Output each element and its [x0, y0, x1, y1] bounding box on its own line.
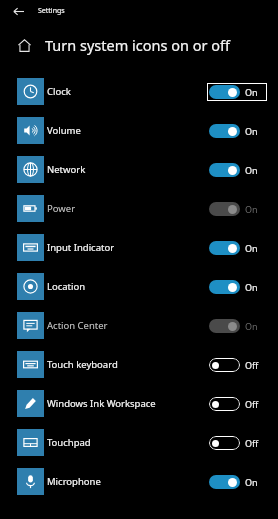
button[interactable]: Clock — [0, 78, 278, 105]
button[interactable]: Home — [13, 34, 35, 56]
button[interactable]: Input Indicator toggle — [209, 241, 265, 255]
button[interactable]: Volume toggle — [209, 124, 265, 138]
staticText: Microphone — [47, 475, 207, 488]
staticText: Volume — [47, 124, 207, 137]
staticText: Network — [47, 163, 207, 176]
staticText: Location — [47, 280, 207, 293]
staticText: On — [245, 203, 258, 215]
staticText: Windows Ink Workspace — [47, 397, 207, 410]
staticText: Power — [47, 202, 207, 215]
button[interactable]: Volume — [0, 117, 278, 144]
button[interactable]: Action Center toggle — [209, 319, 265, 333]
button[interactable]: Back — [8, 1, 28, 21]
button[interactable]: Microphone toggle — [209, 475, 265, 489]
button[interactable]: Touch keyboard — [0, 351, 278, 378]
button[interactable]: Network — [0, 156, 278, 183]
button[interactable]: Clock toggle — [209, 85, 265, 99]
staticText: Touchpad — [47, 436, 207, 449]
button[interactable]: Touch keyboard toggle — [209, 358, 265, 372]
staticText: On — [245, 125, 258, 137]
staticText: Settings — [38, 6, 65, 16]
button[interactable]: Power toggle — [209, 202, 265, 216]
button[interactable]: Touchpad — [0, 429, 278, 456]
button[interactable]: Network toggle — [209, 163, 265, 177]
staticText: Clock — [47, 85, 207, 98]
button[interactable]: Power — [0, 195, 278, 222]
button[interactable]: Windows Ink Workspace toggle — [209, 397, 265, 411]
button[interactable]: Location toggle — [209, 280, 265, 294]
button[interactable]: Input Indicator — [0, 234, 278, 261]
staticText: Off — [245, 398, 259, 410]
staticText: On — [245, 281, 258, 293]
button[interactable]: Microphone — [0, 468, 278, 495]
staticText: Action Center — [47, 319, 207, 332]
staticText: On — [245, 320, 258, 332]
button[interactable]: Windows Ink Workspace — [0, 390, 278, 417]
button[interactable]: Action Center — [0, 312, 278, 339]
staticText: Touch keyboard — [47, 358, 207, 371]
staticText: Off — [245, 437, 259, 449]
staticText: On — [245, 164, 258, 176]
staticText: Input Indicator — [47, 241, 207, 254]
button[interactable]: Touchpad toggle — [209, 436, 265, 450]
button[interactable]: Location — [0, 273, 278, 300]
staticText: Turn system icons on or off — [45, 35, 230, 55]
staticText: On — [245, 476, 258, 488]
staticText: On — [245, 242, 258, 254]
staticText: Off — [245, 359, 259, 371]
staticText: On — [245, 86, 258, 98]
